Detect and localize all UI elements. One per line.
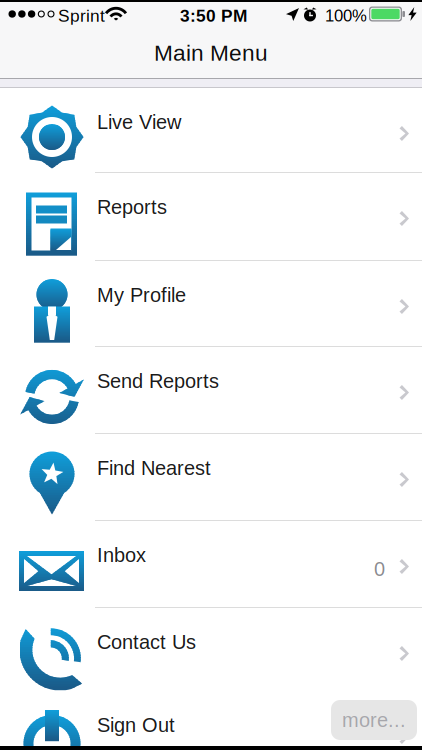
staticText: Find Nearest (97, 457, 211, 479)
button[interactable]: My Profile (0, 261, 422, 347)
staticText: Live View (97, 111, 181, 133)
button[interactable]: Inbox (0, 521, 422, 608)
button[interactable]: more... (331, 700, 417, 740)
button[interactable]: Send Reports (0, 347, 422, 434)
button[interactable]: Find Nearest (0, 434, 422, 521)
staticText: Main Menu (154, 40, 268, 66)
staticText: Reports (97, 196, 167, 218)
staticText: 0 (374, 558, 385, 580)
staticText: Send Reports (97, 370, 219, 392)
staticText: Sprint (58, 6, 105, 25)
staticText: Sign Out (97, 714, 175, 736)
button[interactable]: Sign Out (0, 696, 422, 750)
staticText: My Profile (97, 284, 186, 306)
button[interactable]: Live View (0, 88, 422, 173)
staticText: more... (342, 709, 406, 731)
staticText: 3:50 PM (180, 6, 247, 25)
button[interactable]: Contact Us (0, 608, 422, 696)
staticText: Contact Us (97, 631, 196, 653)
button[interactable]: Reports (0, 173, 422, 261)
staticText: 100% (325, 6, 367, 25)
staticText: Inbox (97, 544, 146, 566)
